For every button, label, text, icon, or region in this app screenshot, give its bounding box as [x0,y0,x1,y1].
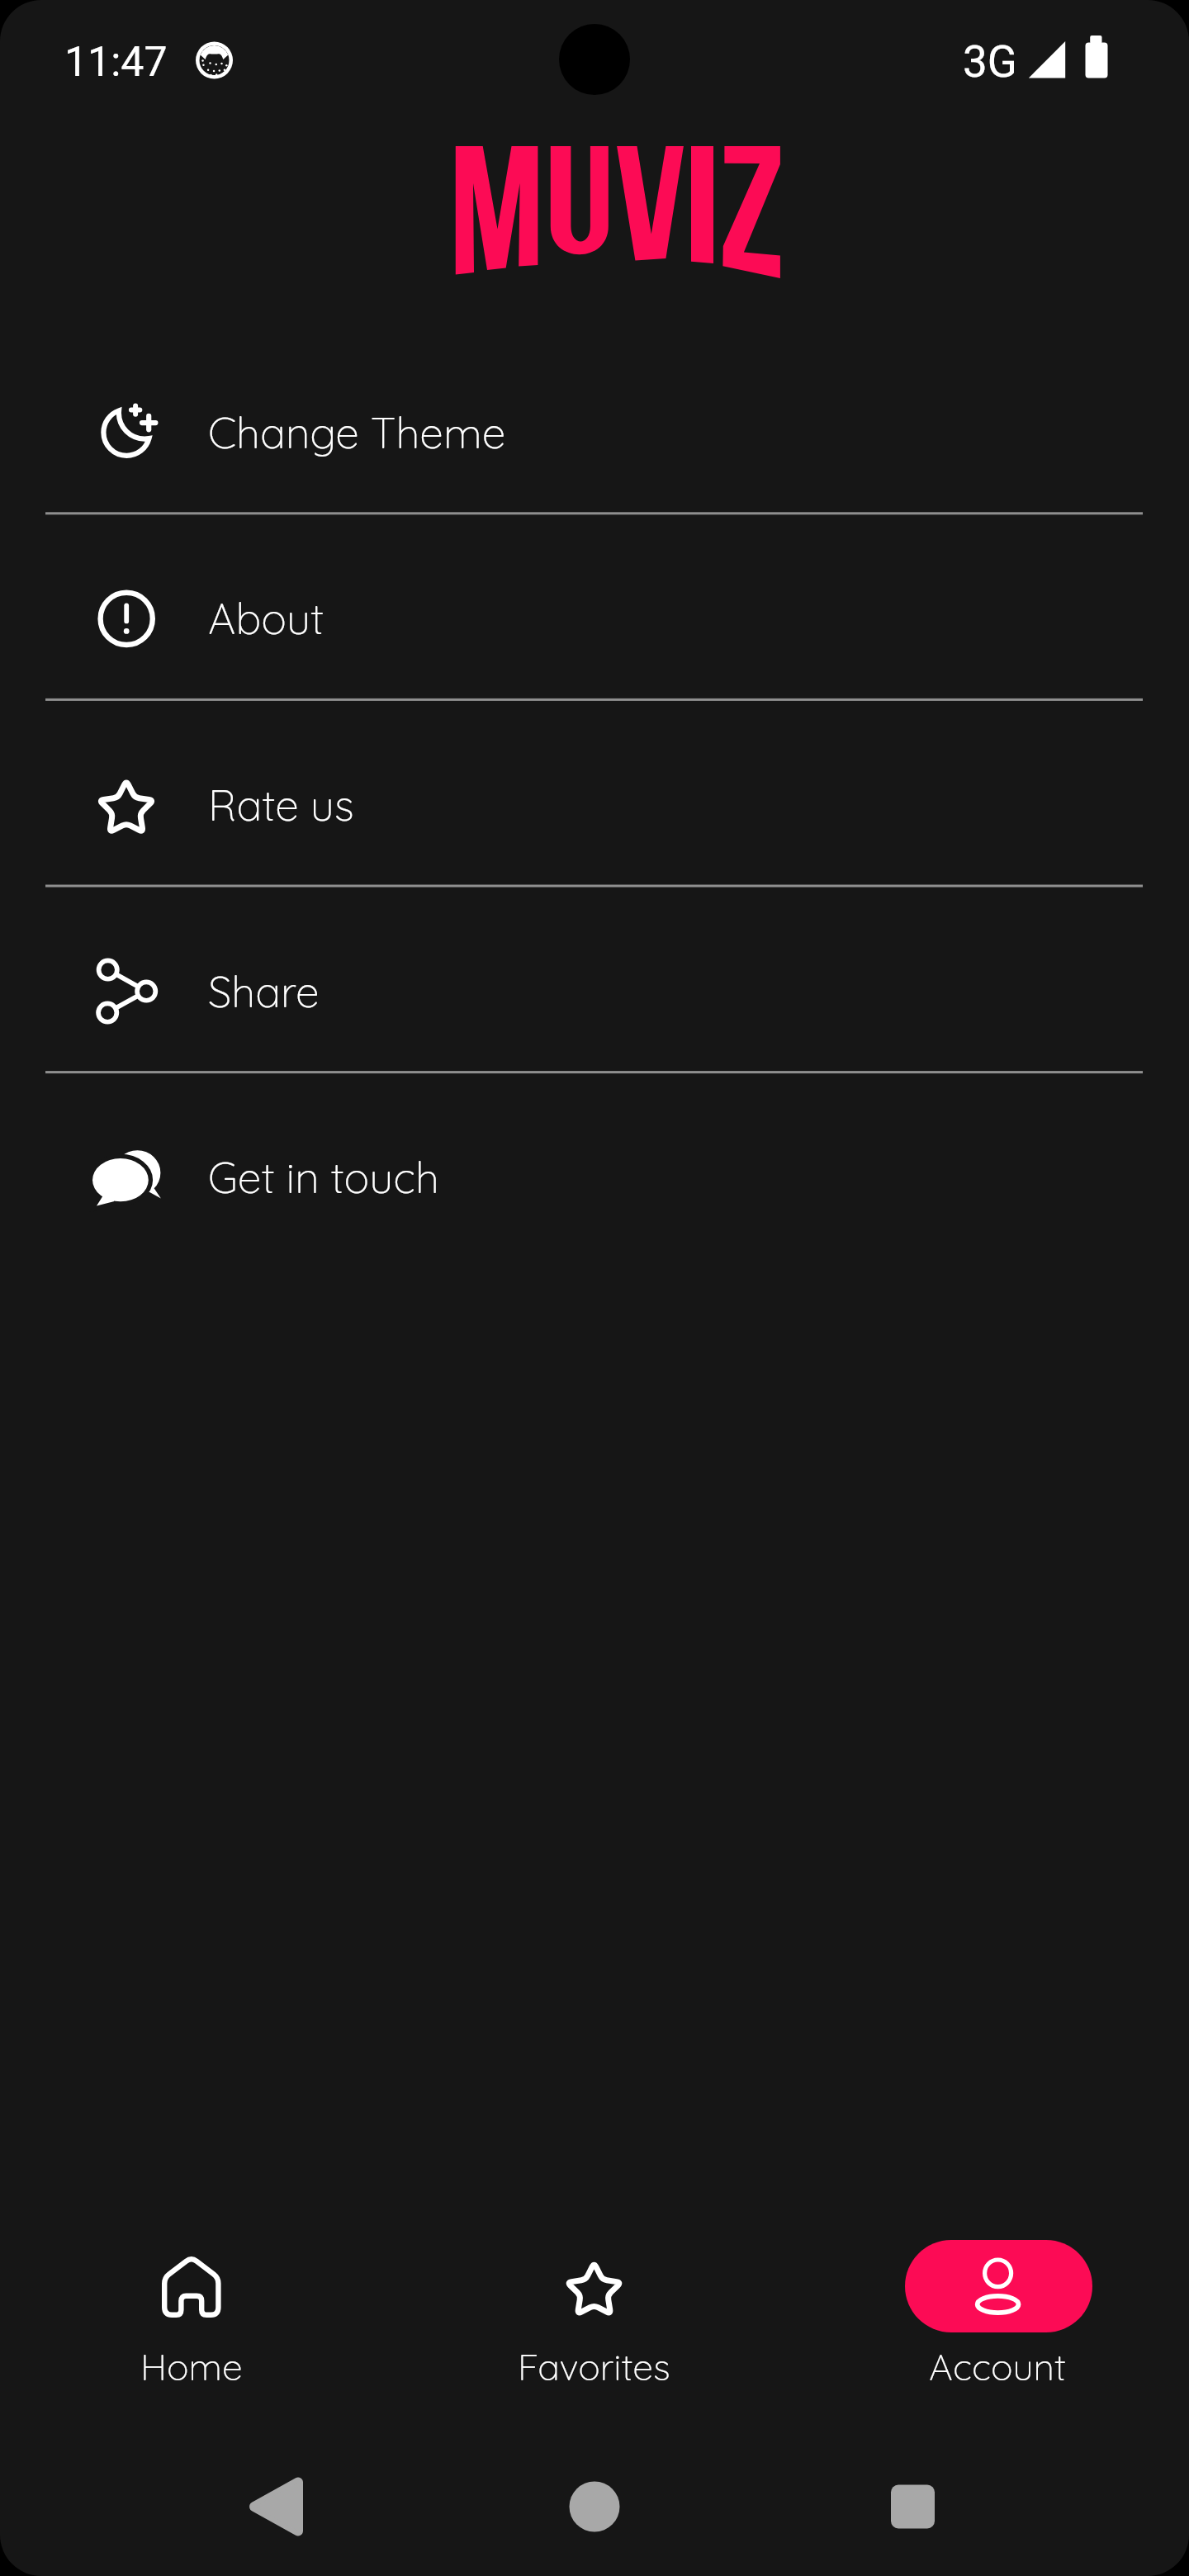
button[interactable]: Recent apps [874,2468,952,2546]
button[interactable]: About [0,537,1189,724]
staticText: Share [208,964,320,1017]
button[interactable]: Account [840,2229,1156,2411]
staticText: Account [929,2343,1067,2389]
staticText: Rate us [208,778,354,831]
staticText: About [208,591,324,644]
button[interactable]: Get in touch [0,1096,1189,1283]
button[interactable]: Share [0,911,1189,1097]
button[interactable]: Favorites [437,2229,753,2411]
staticText: Change Theme [208,405,506,458]
button[interactable]: Rate us [0,724,1189,911]
staticText: Home [140,2343,243,2389]
staticText: Favorites [518,2343,670,2389]
button[interactable]: Home [33,2229,349,2411]
button[interactable]: Back [237,2468,315,2546]
staticText: Get in touch [208,1150,439,1203]
staticText: 11:47 [64,38,168,87]
button[interactable]: Home [555,2468,633,2546]
button[interactable]: Change Theme [0,352,1189,538]
staticText: 3G [963,36,1017,88]
